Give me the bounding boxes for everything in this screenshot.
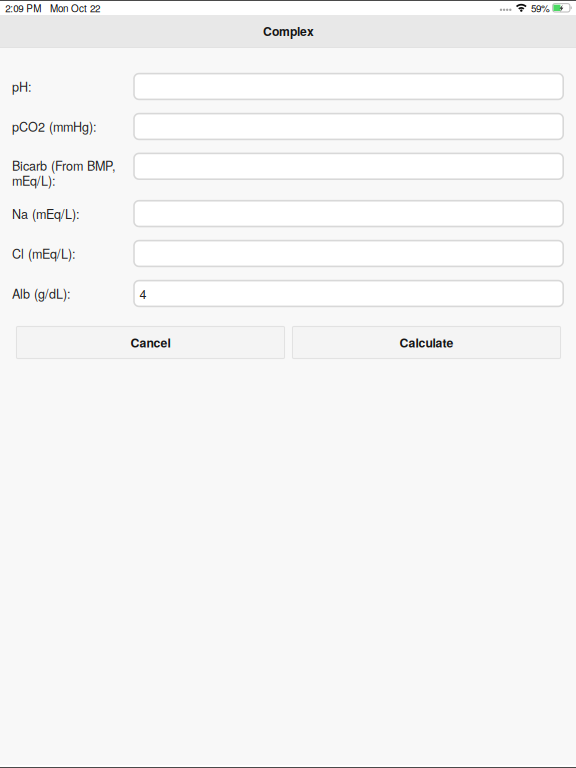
staticText: pCO2 (mmHg): (12, 117, 97, 135)
staticText: 2:09 PM (5, 1, 41, 15)
staticText: pH: (12, 77, 32, 95)
button[interactable]: pCO2 (mmHg) (134, 114, 563, 139)
staticText: Complex (263, 22, 314, 40)
staticText: Cancel (130, 334, 170, 351)
staticText: Na (mEq/L): (12, 204, 80, 222)
button[interactable]: Calculate (292, 326, 560, 358)
staticText: 59% (531, 1, 550, 15)
staticText: 4 (140, 284, 147, 302)
button[interactable]: Bicarb (From BMP, mEq/L) (134, 153, 563, 179)
staticText: Cl (mEq/L): (12, 244, 76, 262)
button[interactable]: Na (mEq/L) (134, 201, 563, 226)
staticText: mEq/L): (12, 171, 56, 189)
button[interactable]: Cancel (16, 326, 284, 358)
button[interactable]: pH (134, 74, 563, 99)
staticText: Bicarb (From BMP, (12, 156, 116, 174)
staticText: Mon Oct 22 (50, 1, 100, 15)
button[interactable]: Cl (mEq/L) (134, 241, 563, 266)
staticText: Calculate (399, 334, 453, 351)
staticText: Alb (g/dL): (12, 284, 71, 302)
button[interactable]: Alb (g/dL) (134, 281, 563, 306)
